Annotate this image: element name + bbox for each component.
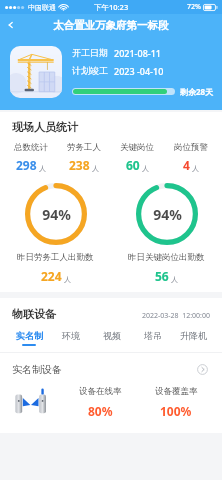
staticText: 环境 [62, 330, 80, 341]
button[interactable]: 总数统计 [4, 142, 57, 173]
staticText: 实名制设备 [12, 363, 62, 376]
button[interactable]: More [194, 361, 210, 377]
button[interactable]: 视频 [91, 330, 132, 346]
staticText: 下午10:23 [94, 2, 129, 12]
staticText: 设备覆盖率 [155, 386, 198, 397]
staticText: 关键岗位 [120, 142, 154, 153]
staticText: 塔吊 [144, 330, 162, 341]
staticText: 238 [69, 157, 90, 173]
button[interactable]: 关键岗位 [110, 142, 164, 173]
staticText: 实名制 [16, 330, 43, 341]
staticText: 298 [16, 157, 37, 173]
staticText: 94% [153, 205, 182, 224]
staticText: 2023 -04-10 [114, 65, 164, 77]
staticText: 2022-03-28 12:00:00 [142, 311, 210, 321]
staticText: 开工日期 [72, 47, 108, 58]
button[interactable]: 实名制 [8, 330, 50, 346]
staticText: 设备在线率 [79, 386, 122, 397]
staticText: 计划竣工 [72, 65, 108, 76]
staticText: 人 [142, 164, 149, 173]
staticText: 人 [39, 164, 46, 173]
staticText: 72% [187, 2, 201, 12]
staticText: 60 [126, 157, 140, 173]
staticText: 人 [92, 164, 99, 173]
staticText: 物联设备 [12, 307, 56, 321]
staticText: 昨日关键岗位出勤数 [128, 252, 205, 263]
staticText: 太合置业万象府第一标段 [53, 19, 169, 32]
staticText: 现场人员统计 [12, 120, 78, 134]
button[interactable]: 塔吊 [132, 330, 173, 346]
staticText: 中国联通 [28, 3, 56, 12]
staticText: 人 [192, 164, 199, 173]
button[interactable]: 环境 [50, 330, 91, 346]
staticText: 劳务工人 [67, 142, 101, 153]
staticText: 80% [88, 403, 113, 419]
staticText: 2021-08-11 [114, 47, 161, 59]
staticText: 94% [42, 205, 71, 224]
button[interactable]: 岗位预警 [164, 142, 218, 173]
staticText: 56 [155, 268, 169, 284]
button[interactable]: 升降机 [173, 330, 214, 346]
staticText: 4 [183, 157, 190, 173]
staticText: 升降机 [180, 330, 207, 341]
staticText: 视频 [103, 330, 121, 341]
staticText: 总数统计 [14, 142, 48, 153]
button[interactable]: 劳务工人 [57, 142, 110, 173]
button[interactable]: Back [0, 14, 22, 36]
staticText: 100% [160, 403, 192, 419]
staticText: 人 [171, 275, 178, 284]
staticText: 剩余28天 [180, 86, 214, 97]
staticText: 人 [64, 275, 71, 284]
staticText: 224 [41, 268, 62, 284]
staticText: 昨日劳务工人出勤数 [17, 252, 94, 263]
staticText: 岗位预警 [174, 142, 208, 153]
